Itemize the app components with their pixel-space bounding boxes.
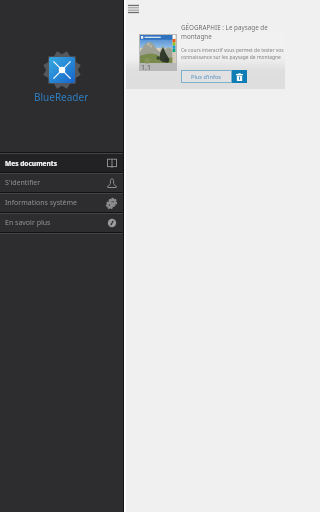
staticText: BlueReader (34, 90, 89, 104)
staticText: En savoir plus (5, 218, 51, 228)
button[interactable]: Delete (232, 70, 247, 83)
staticText: 1.1 (141, 63, 151, 71)
staticText: Informations système (5, 198, 78, 208)
button[interactable]: S'identifier (0, 174, 123, 192)
staticText: Plus d'infos (191, 73, 222, 81)
staticText: GÉOGRAPHIE : Le paysage de montagne (181, 23, 285, 41)
button[interactable]: Mes documents (0, 154, 123, 172)
button[interactable]: En savoir plus (0, 214, 123, 232)
button[interactable]: Informations système (0, 194, 123, 212)
staticText: S'identifier (5, 178, 41, 188)
staticText: Mes documents (5, 159, 57, 168)
other: Documents (107, 158, 117, 168)
button[interactable]: Menu (124, 0, 142, 18)
other: Sign in (107, 178, 117, 188)
other: Learn more (107, 218, 117, 228)
staticText: Ce cours interactif vous permet de teste… (181, 47, 285, 61)
button[interactable]: 1.1 (139, 34, 177, 71)
other: System information (106, 198, 117, 209)
button[interactable]: Plus d'infos (181, 70, 232, 83)
button[interactable] (124, 14, 285, 89)
